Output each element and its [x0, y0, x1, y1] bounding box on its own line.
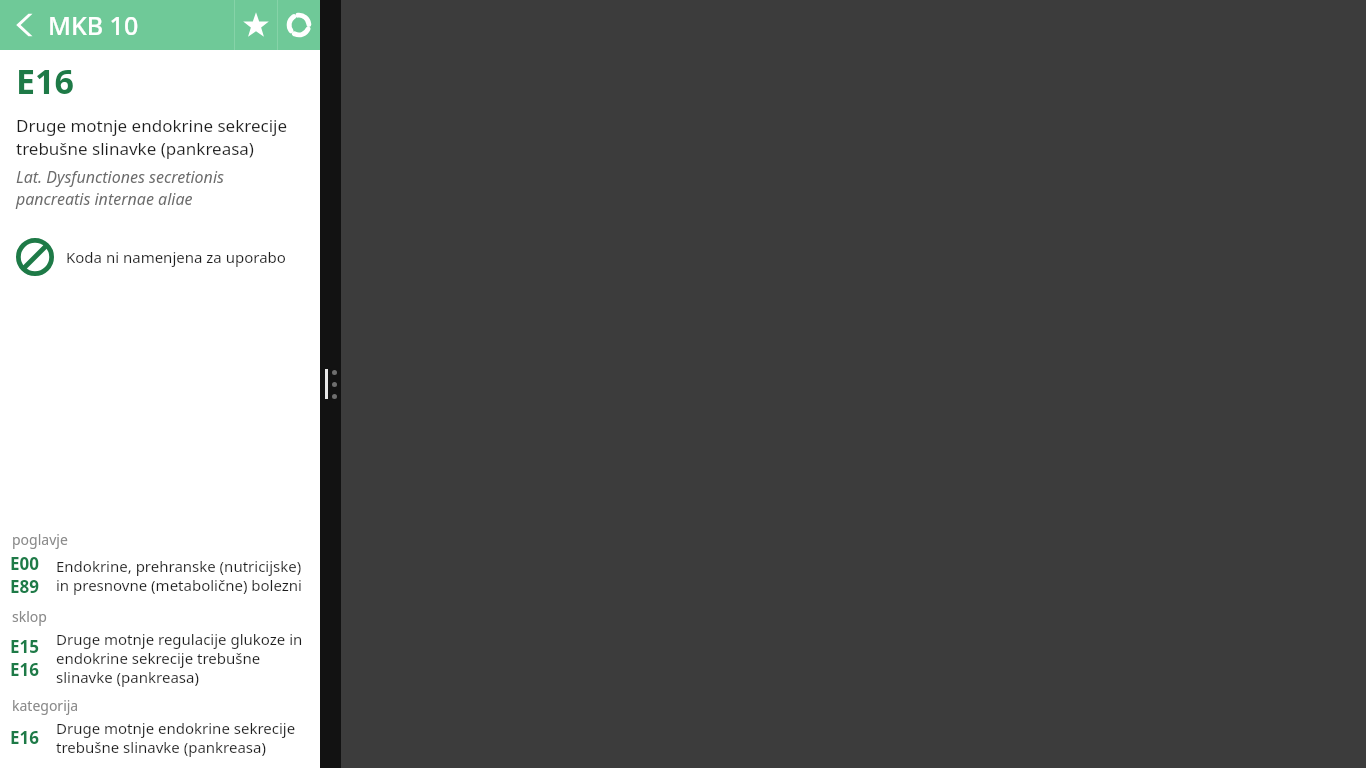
staticText: Koda ni namenjena za uporabo: [66, 247, 286, 267]
staticText: kategorija: [12, 696, 79, 715]
button[interactable]: E15: [10, 628, 304, 688]
staticText: E16: [10, 726, 39, 749]
staticText: MKB 10: [48, 8, 139, 42]
button[interactable]: E00: [10, 551, 304, 599]
button[interactable]: Favourite: [235, 0, 277, 50]
other: Code not for use: [16, 238, 54, 276]
staticText: E16: [16, 58, 74, 104]
staticText: Druge motnje endokrine sekrecije trebušn…: [16, 114, 302, 160]
button[interactable]: Resize panels: [320, 0, 341, 768]
staticText: poglavje: [12, 530, 68, 549]
other: Back: [6, 8, 40, 42]
staticText: E00: [10, 552, 39, 575]
staticText: sklop: [12, 607, 47, 626]
staticText: Endokrine, prehranske (nutricijske) in p…: [56, 556, 304, 595]
staticText: E16: [10, 658, 39, 681]
button[interactable]: E16: [10, 717, 304, 758]
staticText: Lat. Dysfunctiones secretionis pancreati…: [16, 166, 302, 210]
button[interactable]: Code not for use: [16, 238, 302, 276]
button[interactable]: Refresh: [278, 0, 320, 50]
staticText: E89: [10, 575, 39, 598]
staticText: Druge motnje regulacije glukoze in endok…: [56, 629, 304, 687]
button[interactable]: Back: [0, 0, 234, 50]
staticText: Druge motnje endokrine sekrecije trebušn…: [56, 718, 304, 757]
staticText: E15: [10, 635, 39, 658]
